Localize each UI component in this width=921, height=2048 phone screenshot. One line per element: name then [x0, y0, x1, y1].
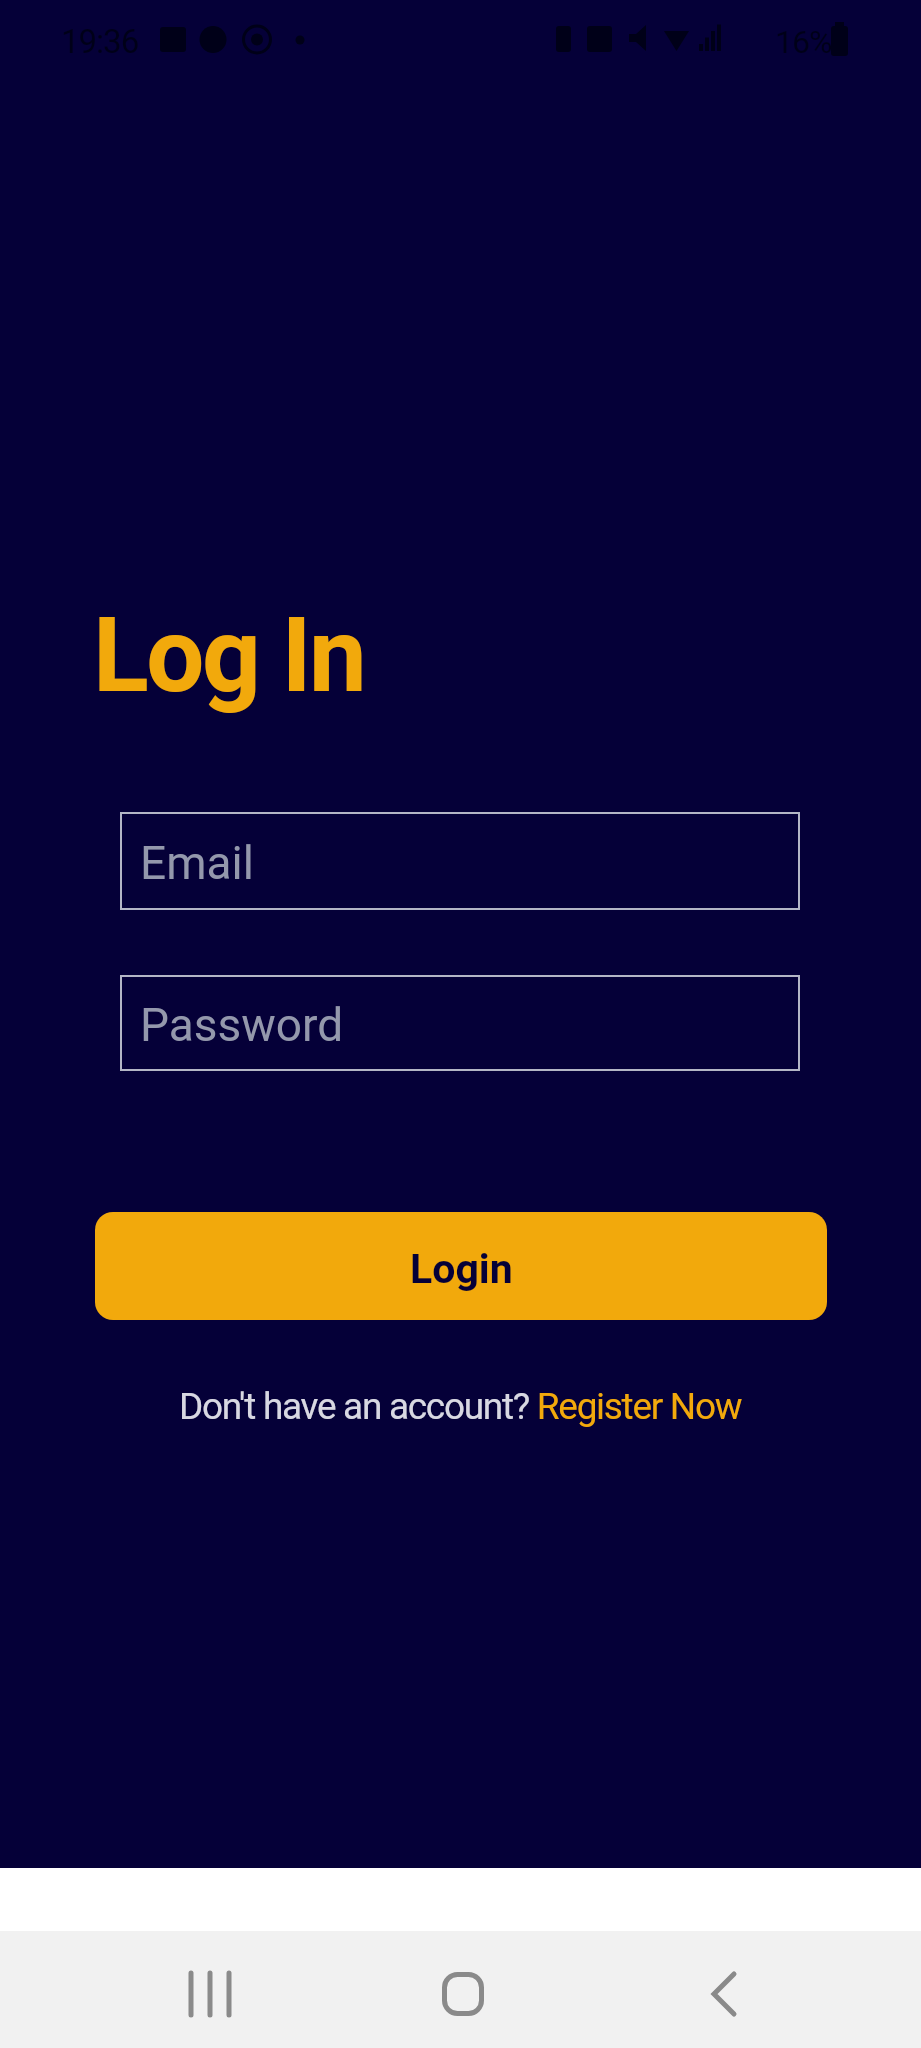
button[interactable]: Password — [120, 975, 800, 1071]
staticText: Login — [410, 1245, 513, 1293]
staticText: Log In — [93, 595, 365, 716]
staticText: 19:36 — [61, 22, 139, 61]
staticText: Don't have an account? Register Now — [179, 1385, 742, 1428]
button[interactable] — [180, 1964, 240, 2024]
button[interactable]: Don't have an account? Register Now — [0, 1383, 921, 1429]
button[interactable] — [433, 1964, 493, 2024]
button[interactable]: Email — [120, 812, 800, 910]
staticText: 16% — [775, 23, 832, 61]
staticText: Password — [140, 998, 344, 1052]
button[interactable] — [694, 1964, 754, 2024]
button[interactable]: Login — [95, 1212, 827, 1320]
staticText: Email — [140, 836, 254, 890]
